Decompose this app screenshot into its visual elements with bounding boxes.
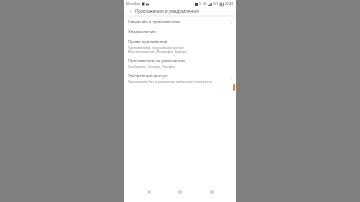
staticText: Сообщения, Галерея, Телефон xyxy=(128,65,176,69)
button[interactable]: Главный экран xyxy=(173,185,187,199)
staticText: Сведения о приложениях xyxy=(128,19,181,25)
staticText: Приложения и уведомления xyxy=(135,8,199,14)
button[interactable]: Назад xyxy=(142,185,156,199)
staticText: Приложения без ограничения мобильного ин… xyxy=(128,80,212,84)
staticText: 20:43 xyxy=(225,2,234,6)
button[interactable]: Обзор xyxy=(205,185,219,199)
button[interactable]: Уведомления xyxy=(124,27,236,37)
staticText: O xyxy=(199,2,202,6)
button[interactable]: Приложения по умолчанию xyxy=(124,56,236,71)
staticText: 4G xyxy=(203,2,207,6)
staticText: Приложениям, получившим доступ: Местопол… xyxy=(128,46,187,54)
staticText: Права приложений xyxy=(128,39,168,45)
button[interactable]: Сведения о приложениях xyxy=(124,17,236,27)
staticText: Экстренный доступ xyxy=(128,73,168,79)
button[interactable]: Назад xyxy=(127,8,133,14)
button[interactable]: Экстренный доступ xyxy=(124,71,236,86)
button[interactable]: Права приложений xyxy=(124,37,236,56)
staticText: МегаФон xyxy=(126,2,141,6)
staticText: Уведомления xyxy=(128,29,156,35)
staticText: Приложения по умолчанию xyxy=(128,58,185,64)
staticText: 35% xyxy=(213,2,219,6)
